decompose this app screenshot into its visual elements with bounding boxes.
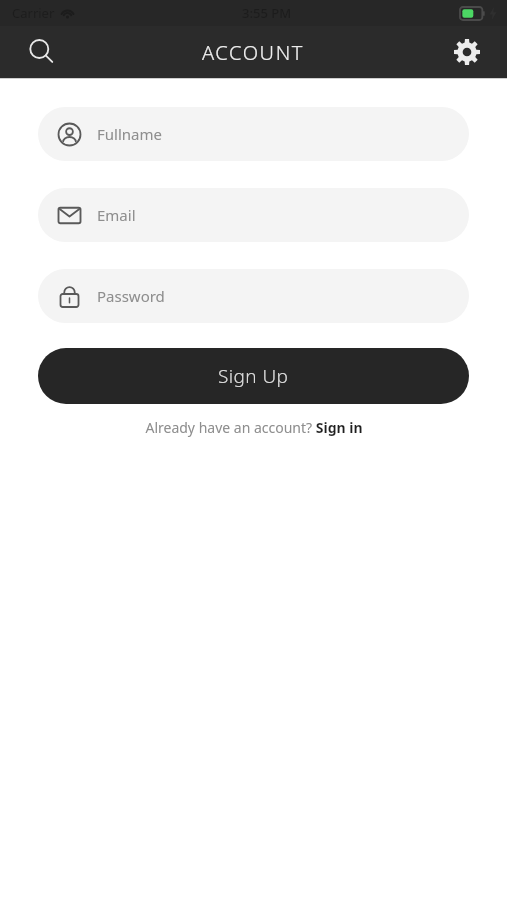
staticText: ACCOUNT — [202, 39, 305, 66]
button[interactable]: Settings — [445, 30, 489, 74]
staticText: Password — [97, 286, 165, 306]
staticText: Email — [97, 205, 136, 225]
button[interactable]: Email — [38, 188, 469, 242]
button[interactable]: Search — [20, 30, 64, 74]
button[interactable]: Already have an account? Sign in — [38, 418, 469, 437]
button[interactable]: Sign Up — [38, 348, 469, 404]
button[interactable]: Fullname — [38, 107, 469, 161]
staticText: Already have an account? Sign in — [145, 418, 363, 437]
staticText: Sign Up — [218, 363, 289, 389]
staticText: Fullname — [97, 124, 162, 144]
staticText: 3:55 PM — [242, 4, 292, 22]
button[interactable]: Password — [38, 269, 469, 323]
